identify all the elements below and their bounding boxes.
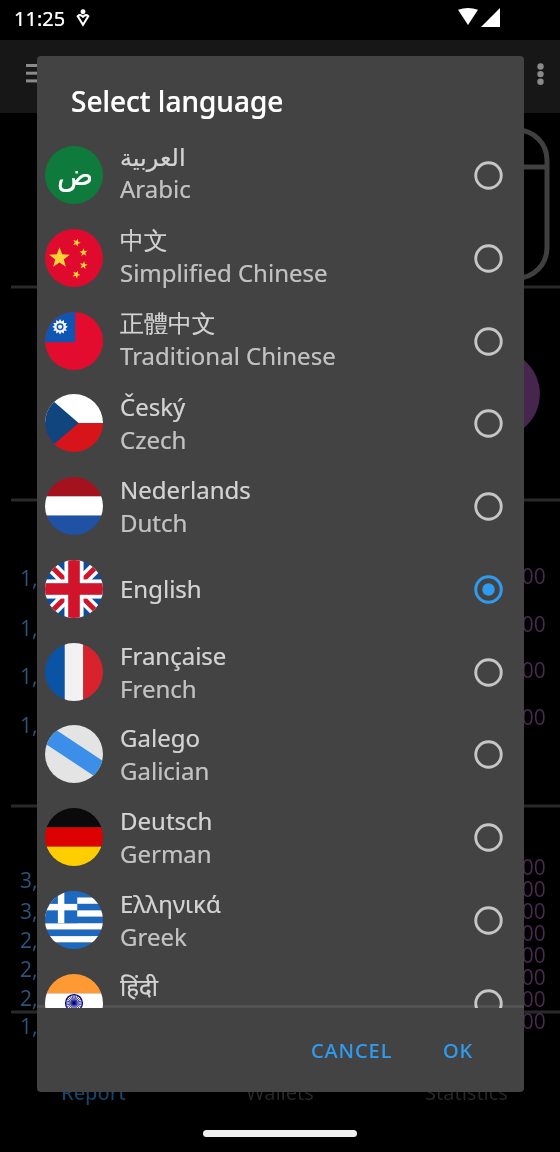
button[interactable]: OK <box>431 1027 486 1074</box>
button[interactable]: Open navigation drawer <box>26 64 47 83</box>
staticText: Arabic <box>120 172 191 205</box>
staticText: German <box>120 837 212 870</box>
staticText: 4,500 <box>492 875 546 904</box>
staticText: Czech <box>120 423 187 456</box>
staticText: Traditional Chinese <box>120 339 336 372</box>
staticText: 3,000 <box>20 866 74 895</box>
staticText: Select language <box>71 82 284 120</box>
staticText: Française <box>120 639 227 672</box>
staticText: Hindi <box>120 1003 180 1008</box>
staticText: 3,200 <box>20 897 74 926</box>
staticText: 3,000 <box>492 656 546 685</box>
staticText: French <box>120 672 197 705</box>
staticText: Wallets <box>246 1079 314 1106</box>
staticText: 1,500 <box>20 662 74 691</box>
button[interactable]: Český <box>37 381 524 464</box>
staticText: 正體中文 <box>120 309 216 339</box>
staticText: Greek <box>120 920 187 953</box>
button[interactable]: ض <box>37 133 524 216</box>
staticText: 2,500 <box>492 963 546 992</box>
staticText: 中文 <box>120 226 168 256</box>
staticText: 4,000 <box>492 610 546 639</box>
staticText: OK <box>443 1037 474 1064</box>
staticText: 1,400 <box>20 711 74 740</box>
staticText: 2,800 <box>20 926 74 955</box>
staticText: 1,600 <box>20 1012 74 1041</box>
button[interactable]: CANCEL <box>299 1027 405 1074</box>
staticText: हिंदी <box>120 970 158 1003</box>
staticText: Deutsch <box>120 804 213 837</box>
staticText: 4,000 <box>492 897 546 926</box>
staticText: Ελληνικά <box>120 887 221 920</box>
button[interactable]: Française <box>37 630 524 713</box>
staticText: 3,500 <box>492 919 546 948</box>
staticText: العربية <box>120 144 186 172</box>
staticText: 5,000 <box>492 562 546 591</box>
staticText: Dutch <box>120 506 188 539</box>
button[interactable]: English <box>37 547 524 630</box>
button[interactable]: More options <box>537 63 544 85</box>
staticText: 2,000 <box>20 984 74 1013</box>
staticText: Galician <box>120 754 210 787</box>
button[interactable]: 正體中文 <box>37 299 524 382</box>
staticText: 2,000 <box>492 985 546 1014</box>
button[interactable]: Galego <box>37 712 524 795</box>
staticText: 3,000 <box>492 941 546 970</box>
button[interactable]: 中文 <box>37 216 524 299</box>
staticText: Český <box>120 390 186 423</box>
button[interactable]: Wallets <box>186 1066 373 1118</box>
staticText: 1,500 <box>492 1007 546 1036</box>
staticText: 1,700 <box>20 564 74 593</box>
staticText: 1,600 <box>20 614 74 643</box>
button[interactable]: Report <box>0 1066 186 1118</box>
button[interactable]: Statistics <box>373 1066 560 1118</box>
staticText: Galego <box>120 721 200 754</box>
staticText: 11:25 <box>14 5 66 32</box>
staticText: 2,400 <box>20 955 74 984</box>
button[interactable]: Ελληνικά <box>37 878 524 961</box>
staticText: CANCEL <box>311 1037 393 1064</box>
button[interactable]: Deutsch <box>37 795 524 878</box>
staticText: 5,000 <box>492 853 546 882</box>
button[interactable]: हिंदी <box>37 961 524 1008</box>
staticText: Statistics <box>425 1079 508 1106</box>
staticText: Nederlands <box>120 473 251 506</box>
button[interactable]: Nederlands <box>37 464 524 547</box>
staticText: 2,000 <box>492 703 546 732</box>
staticText: Report <box>61 1079 126 1106</box>
staticText: English <box>120 572 202 605</box>
staticText: Simplified Chinese <box>120 256 328 289</box>
staticText: ض <box>57 157 94 192</box>
